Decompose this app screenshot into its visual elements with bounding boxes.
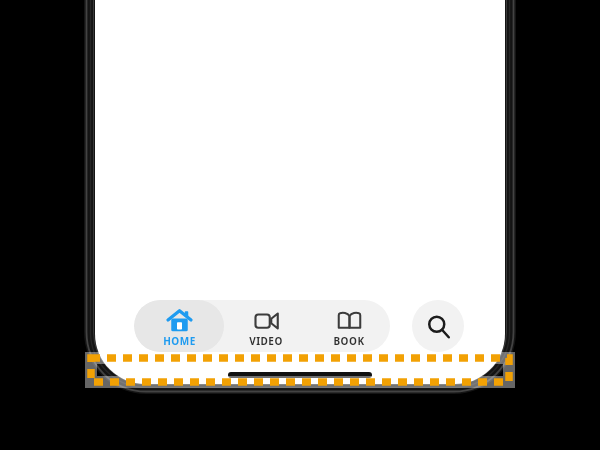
staticText: HOME <box>163 334 196 348</box>
button[interactable]: HOME <box>134 300 224 352</box>
button[interactable]: BOOK <box>307 300 390 352</box>
staticText: VIDEO <box>249 334 283 348</box>
button[interactable]: VIDEO <box>224 300 307 352</box>
staticText: BOOK <box>333 334 365 348</box>
button[interactable]: Search <box>412 300 464 352</box>
